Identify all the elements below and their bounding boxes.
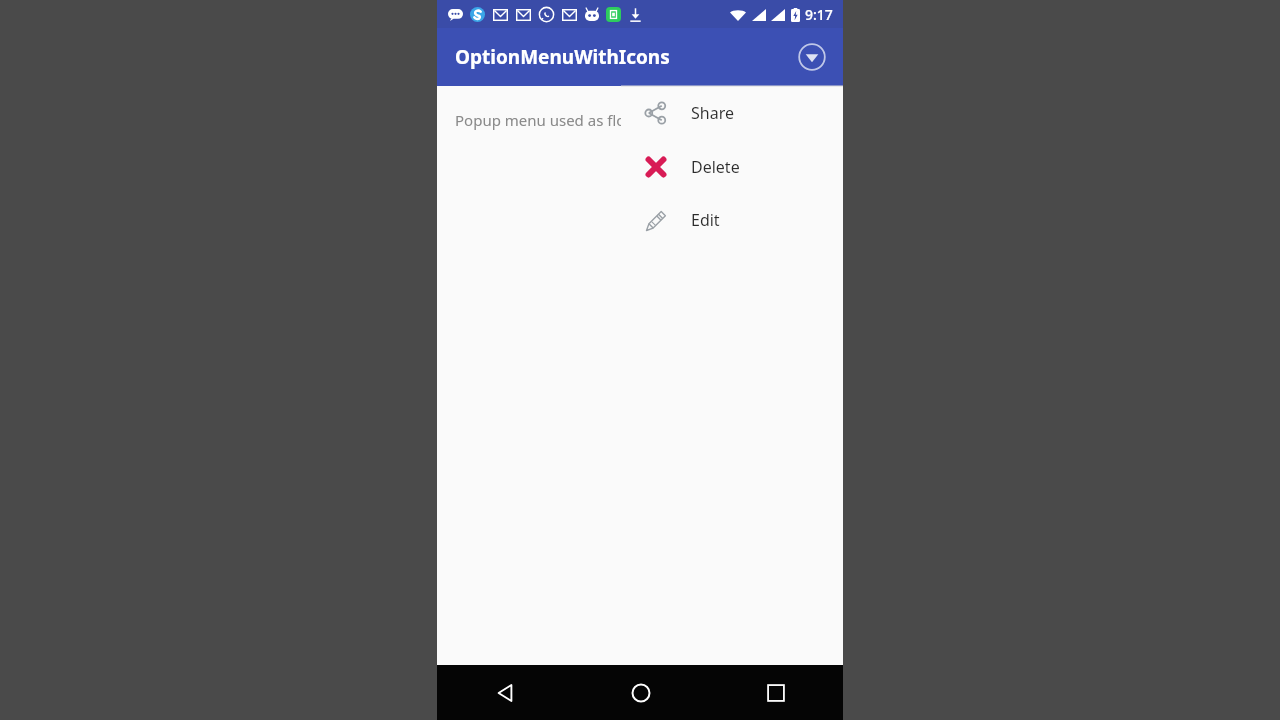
staticText: OptionMenuWithIcons [455,44,670,70]
staticText: Share [691,102,734,124]
button[interactable]: Share [621,86,843,140]
button[interactable]: Home [573,665,708,720]
staticText: 9:17 [805,5,833,24]
staticText: Delete [691,156,740,178]
button[interactable]: Back [437,665,573,720]
staticText: Popup menu used as floating menu [455,110,707,130]
button[interactable]: More options [795,40,829,74]
button[interactable]: Edit [621,194,843,246]
staticText: Edit [691,209,720,231]
button[interactable]: Recent apps [708,665,843,720]
button[interactable]: Delete [621,140,843,194]
